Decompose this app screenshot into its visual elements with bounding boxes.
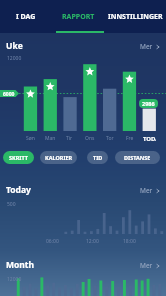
staticText: KALORIER <box>45 154 73 161</box>
staticText: Tir <box>66 135 73 142</box>
staticText: 2986 <box>142 100 155 107</box>
button[interactable]: SKRITT <box>3 151 34 164</box>
staticText: Ons <box>85 135 95 142</box>
button[interactable]: Mer <box>138 185 162 196</box>
button[interactable]: DISTANSE <box>115 151 160 164</box>
staticText: DISTANSE <box>124 154 151 161</box>
staticText: INNSTILLINGER <box>108 12 163 22</box>
staticText: 12:00 <box>86 238 99 245</box>
staticText: Mer <box>140 261 153 270</box>
staticText: Man <box>45 135 56 142</box>
staticText: Today <box>6 184 31 196</box>
staticText: Mer <box>140 186 153 195</box>
button[interactable]: KALORIER <box>40 151 77 164</box>
staticText: Tor <box>106 135 114 142</box>
staticText: I DAG <box>16 12 36 22</box>
staticText: RAPPORT <box>62 12 95 22</box>
staticText: 6000 <box>3 91 15 98</box>
staticText: Uke <box>6 40 23 52</box>
staticText: 18:00 <box>123 238 136 245</box>
staticText: Fre <box>126 135 134 142</box>
staticText: SKRITT <box>9 154 28 161</box>
button[interactable]: Mer <box>138 41 162 52</box>
button[interactable]: RAPPORT <box>52 0 105 33</box>
staticText: 12000 <box>7 55 22 62</box>
staticText: TID <box>93 154 103 161</box>
staticText: 12000 <box>7 276 22 283</box>
staticText: Søn <box>26 135 35 142</box>
staticText: 500 <box>7 201 16 208</box>
staticText: 06:00 <box>46 238 59 245</box>
button[interactable]: INNSTILLINGER <box>105 0 166 33</box>
button[interactable]: Mer <box>138 260 162 271</box>
staticText: Mer <box>140 42 153 51</box>
button[interactable]: I DAG <box>0 0 52 33</box>
staticText: TODAY <box>143 135 156 143</box>
staticText: Month <box>6 259 35 271</box>
button[interactable]: TID <box>87 151 108 164</box>
